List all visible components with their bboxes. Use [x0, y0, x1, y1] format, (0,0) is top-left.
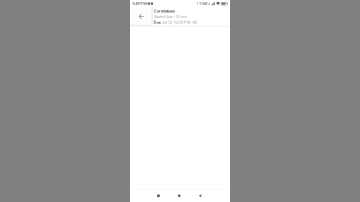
staticText: Graded Quiz • 30 min — [154, 15, 187, 19]
staticText: Jul 13, 12:59 PM -05 — [162, 20, 197, 25]
staticText: Due — [154, 20, 162, 25]
button[interactable]: Recent apps — [154, 189, 162, 202]
staticText: 9:49 PM — [132, 1, 146, 6]
button[interactable]: Back — [196, 189, 204, 202]
button[interactable]: Home — [175, 189, 183, 202]
staticText: Correlations — [154, 8, 175, 13]
button[interactable]: Back — [130, 7, 152, 25]
staticText: 1.9 KB/s — [196, 1, 210, 6]
